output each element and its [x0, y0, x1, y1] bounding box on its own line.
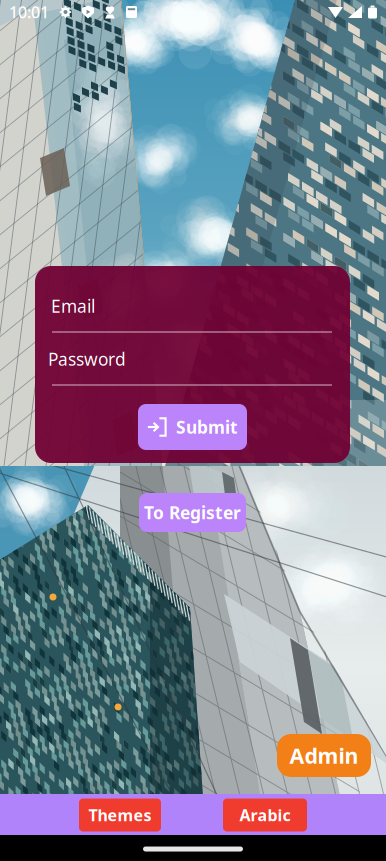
button[interactable]: To Register	[139, 493, 246, 532]
button[interactable]: Admin	[277, 734, 371, 777]
staticText: Email	[51, 294, 95, 317]
staticText: Themes	[88, 804, 151, 826]
staticText: To Register	[144, 501, 241, 524]
staticText: Password	[48, 347, 126, 370]
staticText: Submit	[176, 415, 238, 438]
staticText: 10:01	[9, 1, 49, 23]
button[interactable]: Arabic	[223, 798, 307, 831]
staticText: Admin	[289, 741, 358, 770]
button[interactable]: Themes	[79, 798, 161, 831]
staticText: Arabic	[239, 804, 290, 826]
button[interactable]: Submit	[138, 404, 247, 450]
